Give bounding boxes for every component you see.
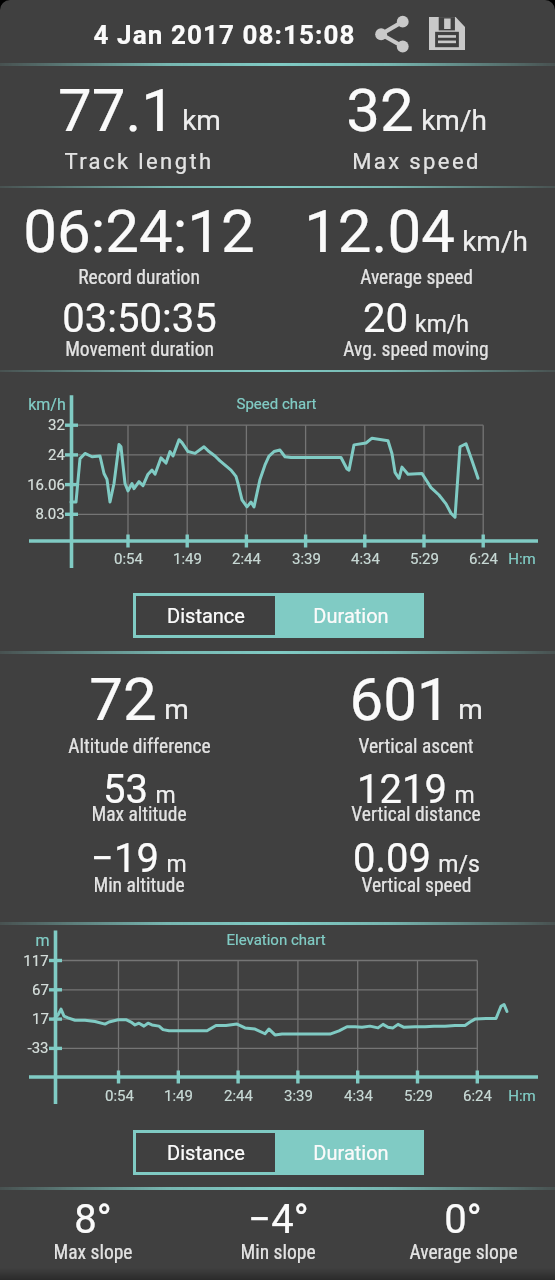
- staticText: −4°: [248, 1196, 309, 1243]
- staticText: km/h: [28, 395, 66, 414]
- staticText: 1219: [357, 766, 447, 813]
- staticText: Track length: [64, 149, 214, 175]
- button[interactable]: Duration: [278, 593, 424, 638]
- staticText: Record duration: [78, 266, 200, 289]
- button[interactable]: Distance: [133, 1130, 278, 1175]
- staticText: 12.04: [304, 196, 455, 266]
- staticText: Average slope: [409, 1241, 518, 1264]
- staticText: 20: [363, 295, 408, 342]
- staticText: Duration: [313, 604, 389, 627]
- staticText: 6:24: [469, 550, 498, 568]
- staticText: 72: [89, 664, 157, 734]
- staticText: Avg. speed moving: [343, 338, 489, 361]
- staticText: -33: [27, 1039, 49, 1057]
- staticText: Max altitude: [91, 803, 187, 826]
- button[interactable]: [425, 10, 469, 54]
- staticText: Movement duration: [65, 338, 214, 361]
- staticText: Max slope: [53, 1241, 133, 1264]
- staticText: km/h: [415, 311, 469, 338]
- staticText: Min slope: [240, 1241, 316, 1264]
- staticText: Vertical ascent: [358, 735, 474, 758]
- button[interactable]: Duration: [278, 1130, 424, 1175]
- staticText: m/s: [438, 851, 480, 878]
- staticText: Distance: [167, 604, 245, 627]
- staticText: 53: [103, 766, 148, 813]
- staticText: 0:54: [114, 550, 143, 568]
- staticText: H:m: [508, 1087, 536, 1105]
- staticText: 32: [48, 416, 65, 434]
- staticText: H:m: [508, 550, 536, 568]
- staticText: Min altitude: [93, 874, 185, 897]
- staticText: Speed chart: [236, 395, 317, 413]
- staticText: 32: [346, 75, 414, 145]
- staticText: m: [166, 851, 187, 878]
- staticText: km: [182, 104, 221, 137]
- staticText: Elevation chart: [226, 931, 326, 949]
- staticText: Vertical distance: [351, 803, 481, 826]
- staticText: 3:39: [292, 550, 321, 568]
- staticText: m: [164, 693, 189, 726]
- staticText: 6:24: [463, 1087, 492, 1105]
- staticText: 8°: [74, 1196, 112, 1243]
- staticText: 0.09: [353, 835, 431, 882]
- staticText: 117: [23, 952, 49, 970]
- staticText: Vertical speed: [361, 874, 472, 897]
- staticText: 77.1: [58, 75, 175, 145]
- staticText: 2:44: [232, 550, 261, 568]
- staticText: Distance: [167, 1141, 245, 1164]
- staticText: m: [454, 782, 475, 809]
- staticText: 3:39: [284, 1087, 313, 1105]
- staticText: 24: [48, 446, 65, 464]
- staticText: 4:34: [344, 1087, 373, 1105]
- staticText: m: [35, 931, 50, 950]
- staticText: Average speed: [360, 266, 473, 289]
- staticText: km/h: [462, 225, 528, 258]
- button[interactable]: Distance: [133, 593, 278, 638]
- staticText: 1:49: [164, 1087, 193, 1105]
- staticText: m: [155, 782, 176, 809]
- staticText: km/h: [421, 104, 487, 137]
- staticText: 03:50:35: [62, 295, 217, 342]
- staticText: 0°: [444, 1196, 482, 1243]
- staticText: 16.06: [27, 476, 65, 494]
- button[interactable]: 4 Jan 2017 08:15:08: [79, 16, 369, 54]
- staticText: −19: [91, 835, 159, 882]
- staticText: 5:29: [404, 1087, 433, 1105]
- staticText: Altitude difference: [68, 735, 211, 758]
- staticText: 4:34: [351, 550, 380, 568]
- staticText: Duration: [313, 1141, 389, 1164]
- staticText: 67: [32, 981, 49, 999]
- staticText: 17: [32, 1010, 49, 1028]
- staticText: 8.03: [35, 505, 65, 523]
- staticText: 06:24:12: [23, 196, 255, 266]
- staticText: Max speed: [352, 149, 481, 175]
- staticText: 2:44: [224, 1087, 253, 1105]
- staticText: 5:29: [410, 550, 439, 568]
- staticText: 1:49: [173, 550, 202, 568]
- staticText: 4 Jan 2017 08:15:08: [93, 20, 356, 50]
- staticText: m: [458, 693, 483, 726]
- staticText: 601: [349, 664, 451, 734]
- staticText: 0:54: [105, 1087, 134, 1105]
- button[interactable]: [371, 11, 415, 55]
